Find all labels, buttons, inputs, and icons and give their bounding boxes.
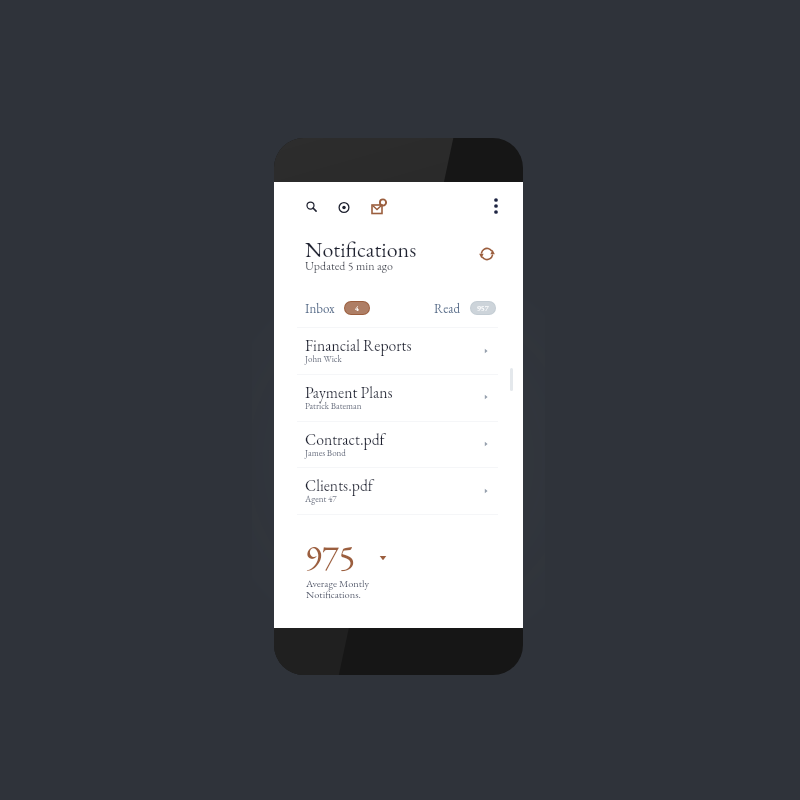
button[interactable]: Inbox	[305, 300, 370, 316]
staticText: Average Montly Notifications.	[306, 577, 370, 602]
staticText: John Wick	[305, 353, 342, 365]
staticText: Inbox	[305, 300, 335, 316]
button[interactable]: Clients.pdf	[274, 467, 523, 514]
staticText: Financial Reports	[305, 335, 412, 355]
button[interactable]: Expand	[376, 551, 390, 565]
button[interactable]: Record	[334, 197, 354, 217]
staticText: Contract.pdf	[305, 429, 385, 449]
staticText: James Bond	[305, 447, 346, 459]
staticText: Agent 47	[305, 493, 337, 505]
staticText: Read	[434, 300, 461, 316]
staticText: Updated 5 min ago	[305, 258, 393, 274]
button[interactable]: More options	[486, 196, 506, 216]
button[interactable]: Financial Reports	[274, 327, 523, 374]
button[interactable]: Payment Plans	[274, 374, 523, 421]
button[interactable]: Read	[434, 300, 496, 316]
staticText: Payment Plans	[305, 382, 393, 402]
staticText: Patrick Bateman	[305, 400, 362, 412]
button[interactable]: Messages	[368, 194, 388, 214]
button[interactable]: Search	[301, 196, 321, 216]
staticText: Notifications	[305, 235, 417, 264]
button[interactable]: Contract.pdf	[274, 421, 523, 468]
staticText: Clients.pdf	[305, 475, 373, 495]
staticText: 4	[355, 303, 359, 313]
staticText: 957	[477, 303, 489, 313]
staticText: 975	[305, 535, 356, 581]
button[interactable]: Refresh	[477, 244, 497, 264]
